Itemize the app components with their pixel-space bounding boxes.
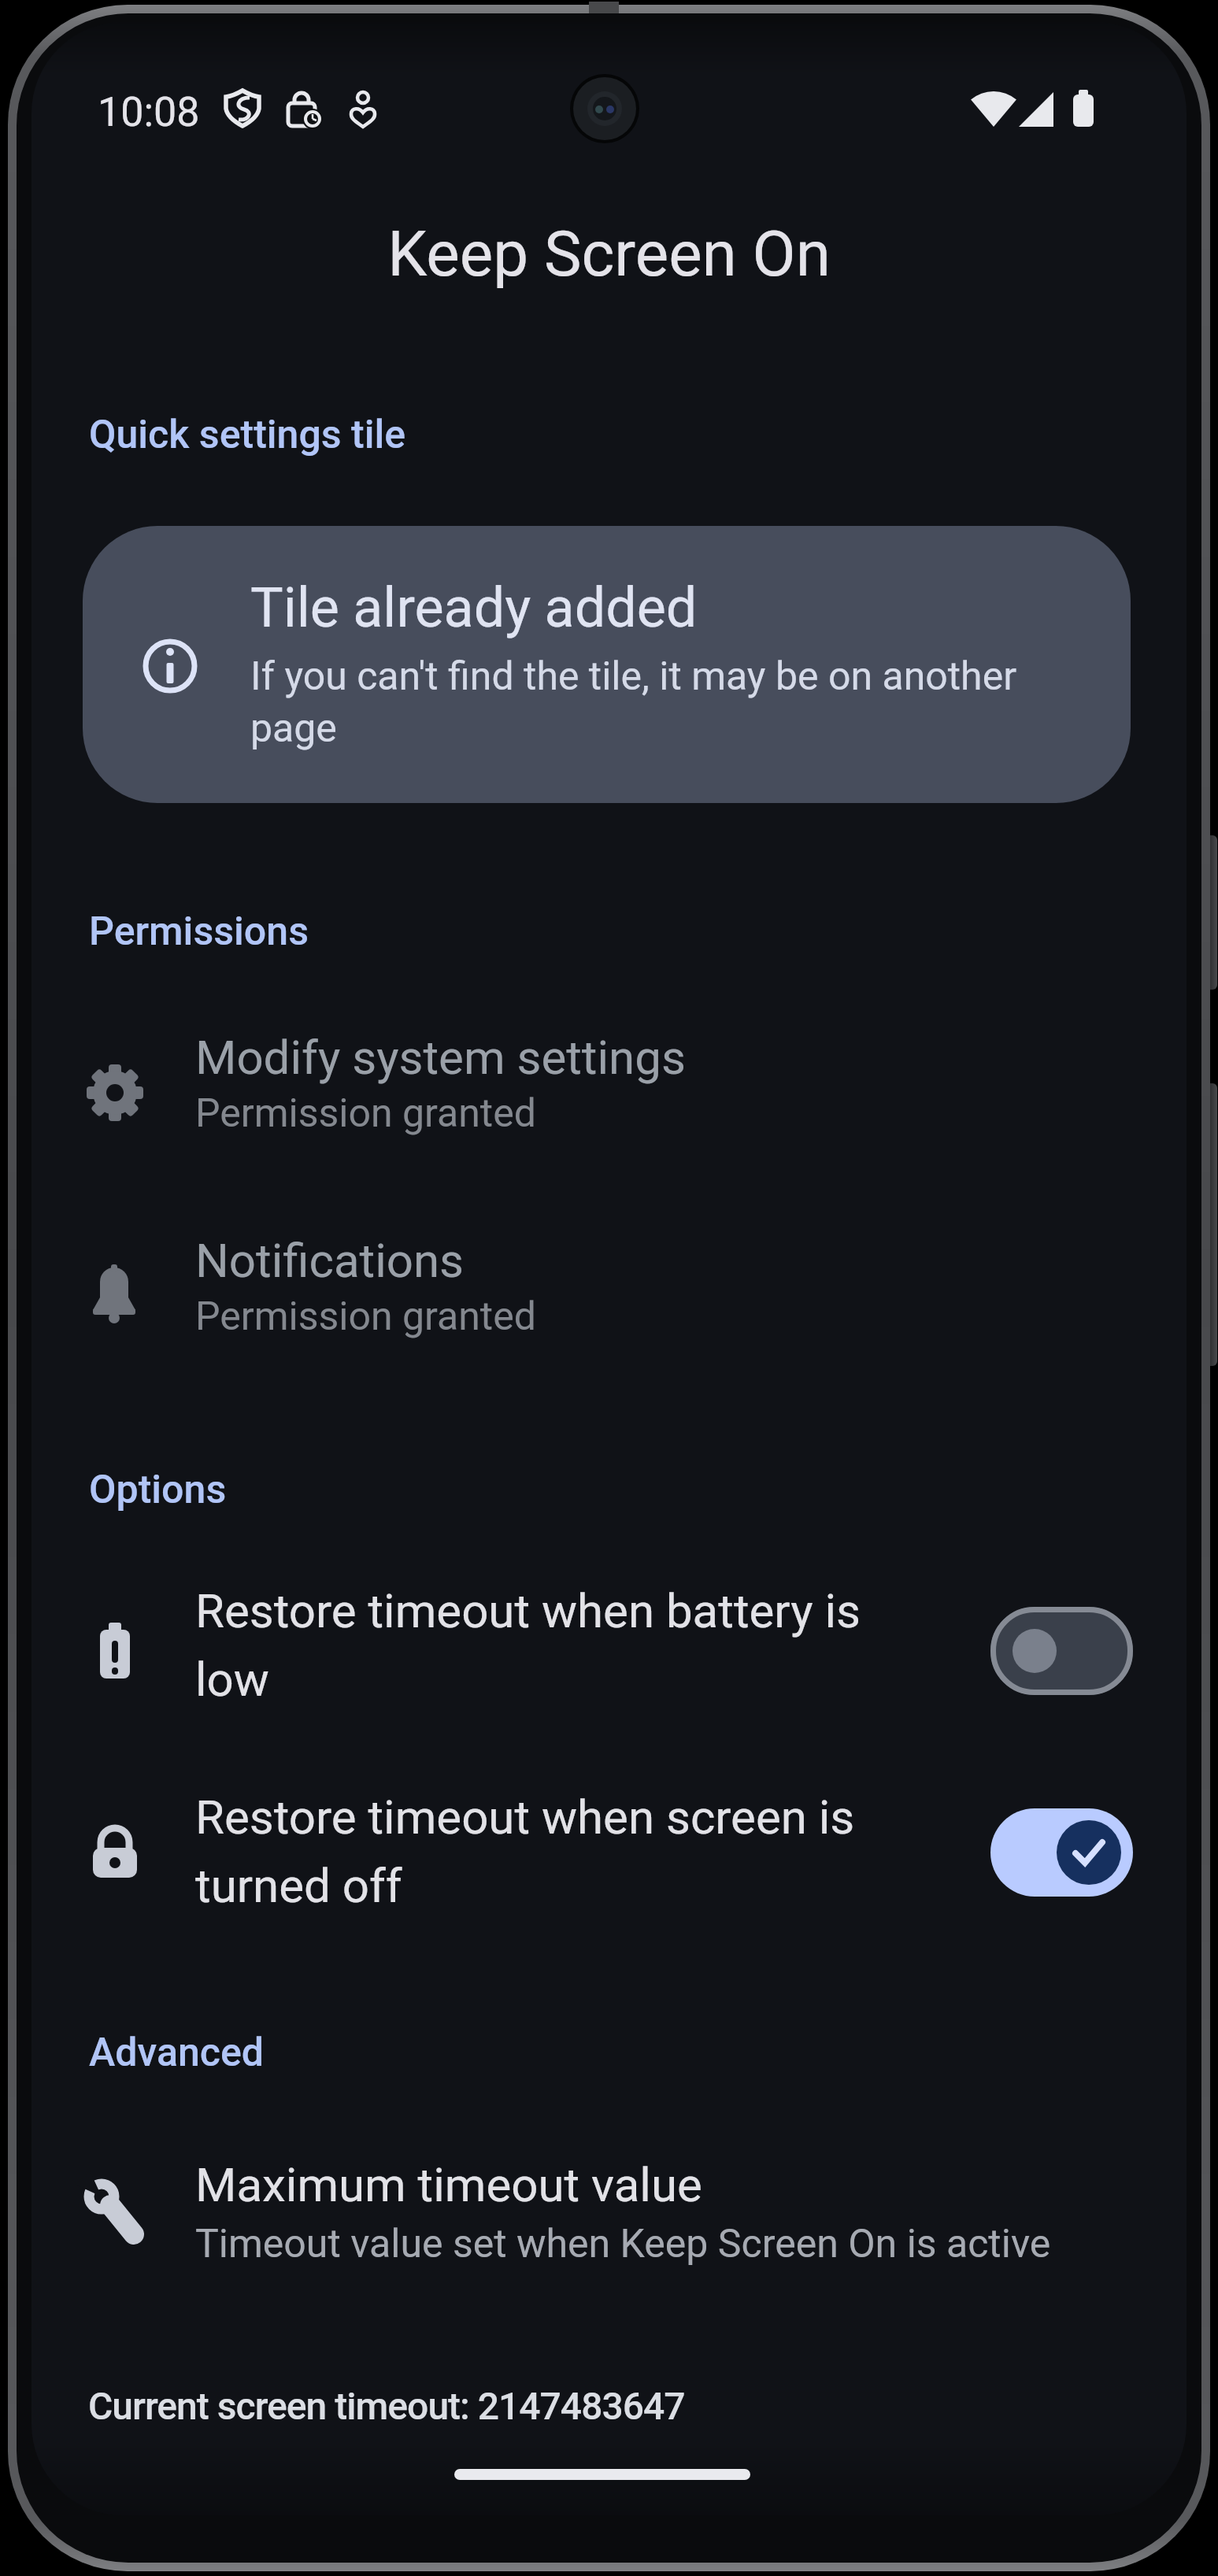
staticText: Options [89, 1467, 227, 1513]
staticText: Restore timeout when screen is [195, 1790, 855, 1845]
button[interactable] [990, 1607, 1133, 1695]
staticText: Advanced [89, 2030, 265, 2076]
staticText: Permission granted [195, 1294, 536, 1340]
button[interactable] [47, 1582, 1171, 1724]
staticText: Current screen timeout: 2147483647 [88, 2384, 685, 2428]
button[interactable] [47, 1219, 1171, 1376]
staticText: 10:08 [98, 88, 200, 136]
button[interactable] [47, 2149, 1171, 2291]
staticText: Tile already added [250, 576, 698, 640]
staticText: page [250, 705, 337, 752]
staticText: Permission granted [195, 1090, 536, 1137]
staticText: Modify system settings [195, 1030, 686, 1085]
staticText: Restore timeout when battery is [195, 1583, 861, 1638]
staticText: low [195, 1652, 269, 1707]
staticText: Timeout value set when Keep Screen On is… [195, 2221, 1051, 2267]
staticText: Maximum timeout value [195, 2157, 702, 2212]
button[interactable] [47, 1016, 1171, 1173]
staticText: turned off [195, 1858, 402, 1913]
button[interactable] [47, 1787, 1171, 1929]
button[interactable] [990, 1808, 1133, 1897]
staticText: If you can't find the tile, it may be on… [250, 653, 1017, 700]
staticText: Permissions [89, 909, 309, 955]
button[interactable] [83, 526, 1131, 803]
staticText: Quick settings tile [89, 412, 406, 458]
staticText: Notifications [195, 1233, 465, 1288]
staticText: Keep Screen On [31, 217, 1187, 291]
